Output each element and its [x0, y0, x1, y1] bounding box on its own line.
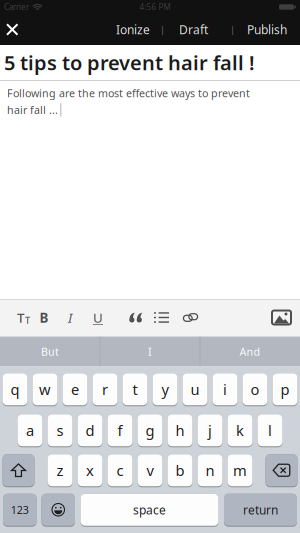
staticText: B [39, 309, 48, 326]
button[interactable]: Draft [179, 21, 208, 37]
button[interactable]: t [122, 373, 147, 406]
button[interactable]: v [137, 454, 162, 487]
button[interactable]: Underline [93, 309, 103, 326]
button[interactable]: j [197, 414, 222, 447]
staticText: e [71, 379, 79, 399]
staticText: o [250, 379, 259, 399]
staticText: T [25, 314, 30, 326]
staticText: v [146, 460, 153, 480]
staticText: w [39, 379, 51, 399]
button[interactable]: y [152, 373, 177, 406]
staticText: Draft [179, 21, 208, 37]
button[interactable]: space [80, 494, 218, 527]
button[interactable]: Block quote [129, 312, 143, 322]
button[interactable]: Bold [39, 309, 48, 326]
staticText: u [190, 379, 199, 399]
button[interactable]: I [100, 336, 200, 366]
staticText: space [133, 502, 166, 518]
staticText: 4:56 PM [139, 2, 170, 12]
staticText: t [132, 379, 137, 399]
button[interactable]: g [137, 414, 162, 447]
button[interactable]: k [227, 414, 252, 447]
button[interactable]: c [107, 454, 132, 487]
button[interactable]: b [167, 454, 192, 487]
staticText: s [56, 420, 63, 440]
staticText: d [85, 420, 94, 440]
staticText: I [68, 309, 72, 326]
staticText: return [243, 502, 278, 518]
staticText: n [205, 460, 214, 480]
staticText: 5 tips to prevent hair fall ! [4, 49, 255, 76]
button[interactable]: Delete [265, 454, 297, 487]
button[interactable]: o [242, 373, 267, 406]
staticText: | [160, 23, 165, 36]
staticText: U [93, 309, 103, 326]
staticText: b [175, 460, 184, 480]
staticText: And [239, 344, 260, 359]
button[interactable]: r [92, 373, 117, 406]
staticText: Ionize [116, 21, 150, 37]
staticText: But [41, 344, 59, 359]
staticText: z [56, 460, 63, 480]
button[interactable]: i [212, 373, 237, 406]
button[interactable]: a [17, 414, 42, 447]
staticText: r [102, 379, 108, 399]
button[interactable]: h [167, 414, 192, 447]
staticText: y [161, 379, 168, 399]
button[interactable]: f [107, 414, 132, 447]
button[interactable]: u [182, 373, 207, 406]
staticText: I [148, 344, 152, 359]
button[interactable]: Italic [68, 309, 72, 326]
button[interactable]: d [77, 414, 102, 447]
staticText: T [17, 309, 24, 326]
button[interactable]: Link [183, 313, 198, 322]
staticText: a [26, 420, 34, 440]
button[interactable]: n [197, 454, 222, 487]
button[interactable]: Insert image [271, 310, 291, 325]
staticText: i [223, 379, 227, 399]
staticText: k [236, 420, 244, 440]
staticText: p [280, 379, 289, 399]
button[interactable]: m [227, 454, 252, 487]
staticText: 123 [11, 503, 29, 517]
button[interactable]: Return [224, 494, 297, 527]
button[interactable]: Text style [17, 309, 30, 326]
staticText: l [268, 420, 272, 440]
button[interactable]: q [2, 373, 27, 406]
staticText: m [233, 460, 247, 480]
button[interactable]: Emoji [41, 494, 75, 527]
staticText: q [10, 379, 19, 399]
button[interactable]: Bulleted list [154, 312, 169, 323]
staticText: Following are the most effective ways to… [7, 86, 250, 100]
staticText: h [175, 420, 184, 440]
button[interactable]: Numbers [3, 494, 36, 527]
button[interactable]: z [47, 454, 72, 487]
button[interactable]: Ionize [116, 21, 150, 37]
button[interactable]: w [32, 373, 57, 406]
button[interactable]: Close [0, 24, 27, 35]
staticText: hair fall ... [7, 103, 58, 117]
staticText: | [230, 23, 235, 36]
staticText: j [208, 420, 212, 440]
staticText: Publish [247, 21, 287, 37]
staticText: c [116, 460, 123, 480]
staticText: x [86, 460, 94, 480]
button[interactable]: And [200, 336, 300, 366]
button[interactable]: e [62, 373, 87, 406]
button[interactable]: Publish [247, 21, 287, 37]
button[interactable]: Shift [2, 454, 34, 487]
staticText: Carrier [4, 2, 29, 12]
button[interactable]: l [257, 414, 282, 447]
staticText: g [145, 420, 154, 440]
staticText: f [117, 420, 122, 440]
button[interactable]: s [47, 414, 72, 447]
button[interactable]: x [77, 454, 102, 487]
button[interactable]: But [0, 336, 100, 366]
button[interactable]: p [272, 373, 297, 406]
